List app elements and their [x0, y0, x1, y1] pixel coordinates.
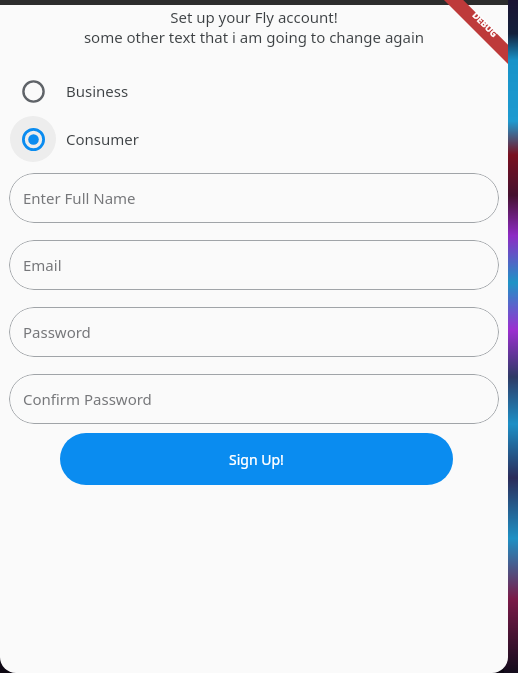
other: Debug banner — [444, 0, 508, 64]
button[interactable]: Business — [0, 67, 508, 115]
staticText: Confirm Password — [23, 389, 152, 409]
button[interactable]: Enter Full Name — [9, 173, 499, 223]
button[interactable]: Confirm Password — [9, 374, 499, 424]
button[interactable]: Consumer — [0, 115, 508, 163]
staticText: Sign Up! — [229, 450, 284, 469]
button[interactable]: Email — [9, 240, 499, 290]
staticText: DEBUG — [470, 9, 501, 39]
staticText: Set up your Fly account! — [0, 7, 508, 27]
staticText: some other text that i am going to chang… — [0, 27, 508, 47]
staticText: Enter Full Name — [23, 188, 136, 208]
staticText: Email — [23, 255, 62, 275]
staticText: Password — [23, 322, 91, 342]
button[interactable]: Sign Up! — [60, 433, 453, 485]
button[interactable]: Password — [9, 307, 499, 357]
staticText: Business — [66, 81, 129, 101]
staticText: Consumer — [66, 129, 139, 149]
